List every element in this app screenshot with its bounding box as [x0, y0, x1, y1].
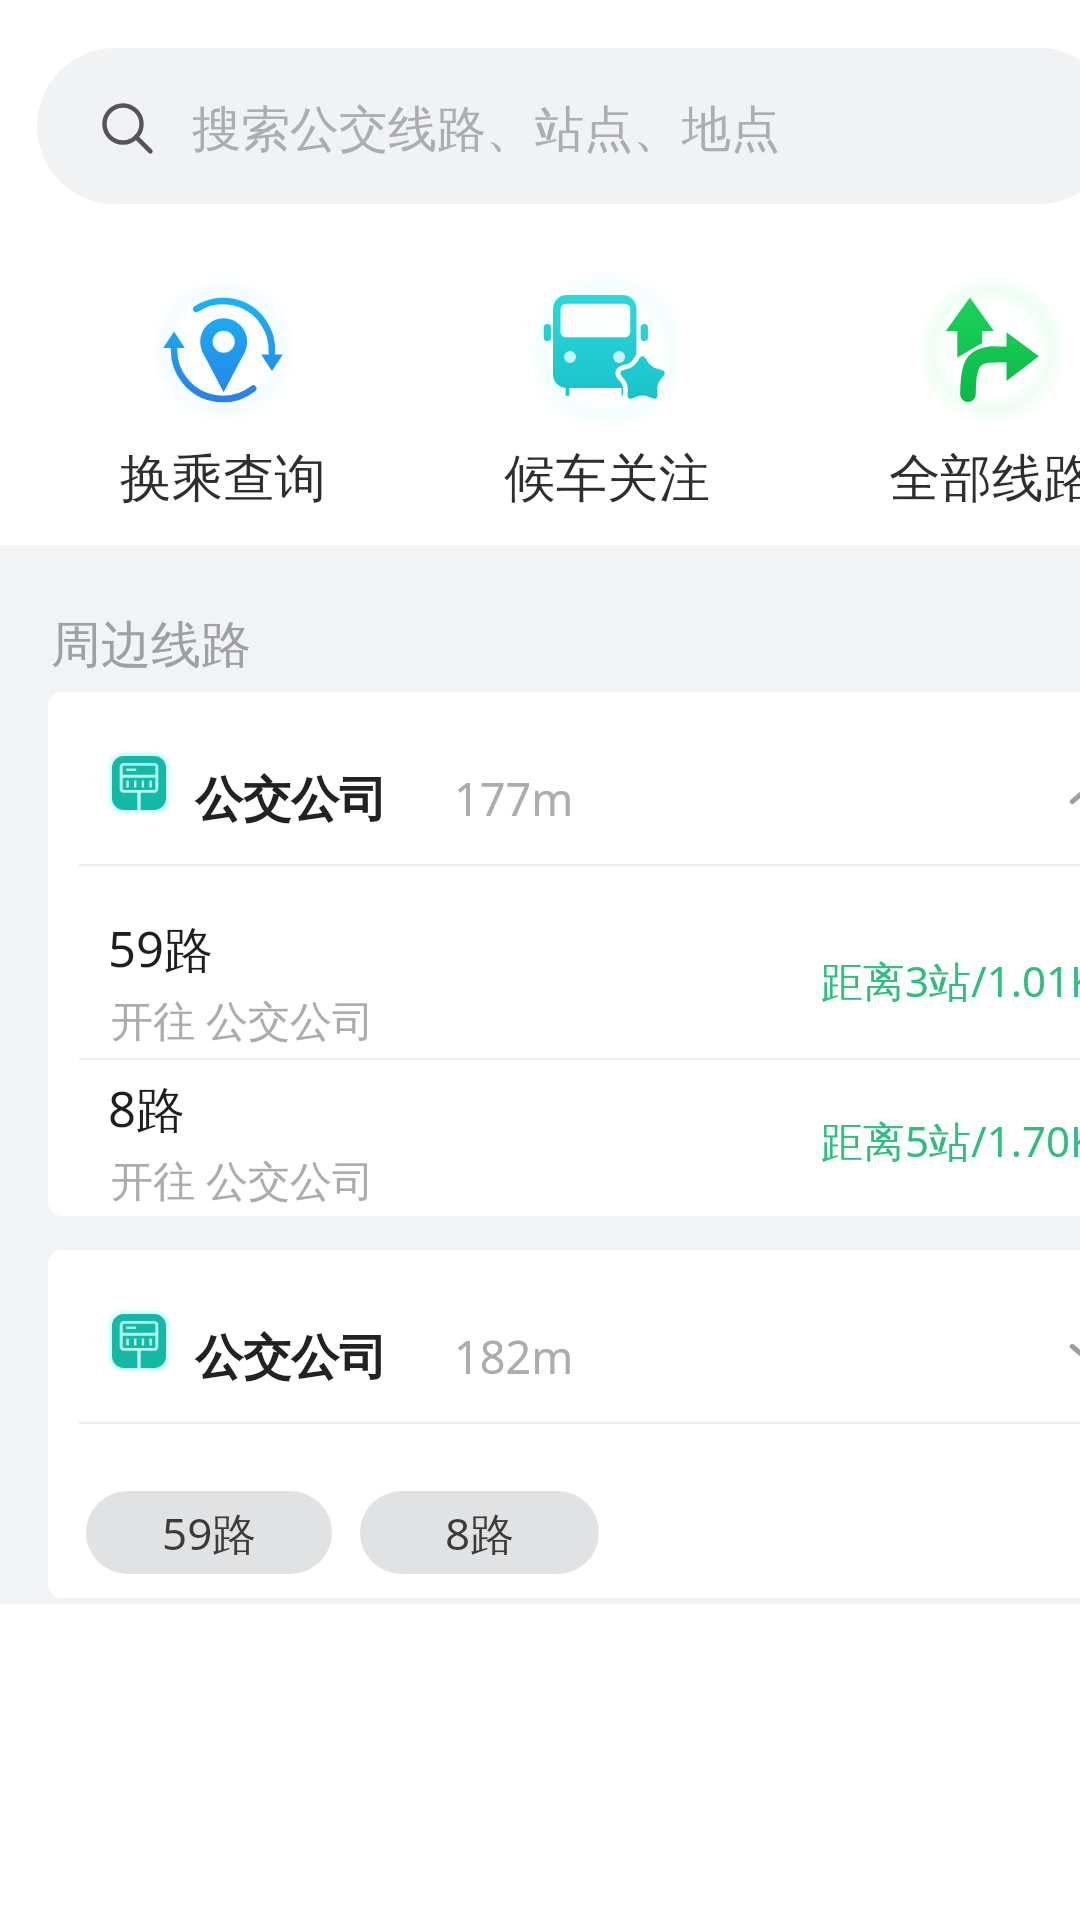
staticText: 182m — [454, 1326, 574, 1387]
staticText: 周边线路 — [51, 614, 251, 677]
staticText: 候车关注 — [477, 446, 737, 511]
button[interactable]: 候车关注 — [477, 284, 737, 520]
staticText: 公交公司 — [195, 770, 387, 830]
button[interactable]: 公交公司 — [48, 1250, 1080, 1419]
button[interactable]: 59路 — [48, 866, 1080, 1058]
staticText: 8路 — [108, 1075, 186, 1142]
staticText: 全部线路 — [862, 446, 1080, 511]
button[interactable]: 8路 — [48, 1060, 1080, 1216]
button[interactable]: 公交公司 — [48, 692, 1080, 861]
button[interactable]: Collapse — [1041, 747, 1080, 843]
staticText: 距离3站/1.01KM — [821, 952, 1080, 1009]
staticText: 8路 — [445, 1503, 515, 1563]
button[interactable]: 换乘查询 — [93, 284, 353, 520]
button[interactable]: 59路 — [86, 1491, 332, 1574]
button[interactable]: 8路 — [360, 1491, 599, 1574]
button[interactable]: Expand — [1041, 1305, 1080, 1401]
other: Search — [104, 105, 146, 147]
staticText: 开往 公交公司 — [111, 991, 374, 1048]
staticText: 59路 — [108, 915, 214, 982]
staticText: 开往 公交公司 — [111, 1151, 374, 1208]
staticText: 搜索公交线路、站点、地点 — [192, 99, 780, 161]
staticText: 177m — [454, 768, 574, 829]
staticText: 距离5站/1.70KM — [821, 1112, 1080, 1169]
button[interactable]: 全部线路 — [862, 284, 1080, 520]
staticText: 59路 — [162, 1503, 257, 1563]
staticText: 公交公司 — [195, 1328, 387, 1388]
staticText: 换乘查询 — [93, 446, 353, 511]
button[interactable]: Search — [37, 48, 1080, 204]
